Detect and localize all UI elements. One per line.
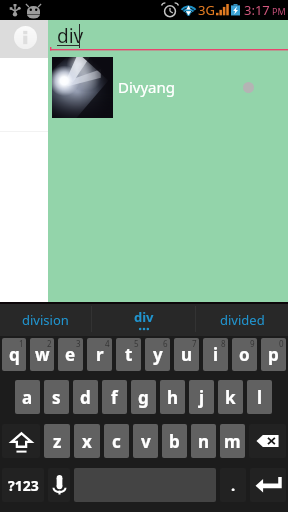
button[interactable]: n (191, 424, 216, 458)
staticText: l (257, 386, 263, 409)
staticText: r (96, 343, 104, 366)
staticText: s (52, 386, 61, 409)
button[interactable]: t (116, 338, 141, 371)
staticText: h (167, 386, 179, 409)
button[interactable]: w (30, 338, 54, 371)
staticText: 3 (76, 338, 81, 349)
button[interactable]: Info (14, 26, 37, 49)
staticText: 7 (192, 338, 197, 349)
staticText: 0 (279, 338, 284, 349)
button[interactable]: h (160, 380, 185, 414)
staticText: m (224, 430, 241, 453)
staticText: div (57, 23, 84, 49)
button[interactable]: division (0, 303, 91, 336)
button[interactable]: Backspace (249, 424, 286, 458)
button[interactable]: u (174, 338, 199, 371)
staticText: 3:17 (244, 1, 270, 19)
staticText: z (53, 430, 62, 453)
staticText: f (111, 386, 118, 409)
button[interactable]: d (73, 380, 98, 414)
button[interactable]: e (58, 338, 83, 371)
staticText: 1 (19, 338, 24, 349)
staticText: . (231, 475, 236, 495)
staticText: division (22, 311, 69, 329)
button[interactable]: Divyang (48, 54, 288, 120)
staticText: 8 (221, 338, 226, 349)
button[interactable]: div (92, 303, 195, 336)
staticText: u (181, 343, 193, 366)
button[interactable]: y (145, 338, 170, 371)
staticText: div (134, 308, 154, 326)
button[interactable]: Symbols (2, 468, 44, 502)
button[interactable]: Shift (2, 424, 40, 458)
staticText: 2 (47, 338, 52, 349)
staticText: 5 (134, 338, 139, 349)
staticText: PM (272, 5, 286, 17)
staticText: 3G (198, 1, 215, 19)
staticText: t (125, 343, 133, 366)
button[interactable]: l (247, 380, 272, 414)
button[interactable]: j (189, 380, 214, 414)
button[interactable]: q (2, 338, 26, 371)
button[interactable]: Voice input (48, 468, 70, 502)
button[interactable]: k (218, 380, 243, 414)
button[interactable]: Enter (250, 468, 286, 502)
staticText: w (35, 343, 50, 366)
staticText: d (80, 386, 91, 409)
button[interactable]: c (104, 424, 129, 458)
button[interactable]: b (162, 424, 187, 458)
button[interactable]: z (44, 424, 70, 458)
staticText: v (141, 430, 151, 453)
button[interactable]: v (133, 424, 158, 458)
staticText: q (9, 343, 20, 366)
staticText: e (65, 343, 76, 366)
staticText: o (239, 343, 250, 366)
button[interactable]: x (74, 424, 100, 458)
staticText: divided (220, 311, 265, 329)
staticText: ?123 (8, 476, 39, 495)
staticText: x (82, 430, 92, 453)
button[interactable]: a (15, 380, 40, 414)
staticText: n (198, 430, 210, 453)
staticText: a (22, 386, 33, 409)
staticText: b (169, 430, 180, 453)
button[interactable]: s (44, 380, 69, 414)
button[interactable]: divided (196, 303, 288, 336)
button[interactable]: g (131, 380, 156, 414)
button[interactable]: Period (220, 468, 246, 502)
staticText: y (153, 343, 163, 366)
button[interactable]: p (261, 338, 286, 371)
staticText: 6 (163, 338, 168, 349)
staticText: 9 (250, 338, 255, 349)
button[interactable]: r (87, 338, 112, 371)
staticText: p (268, 343, 279, 366)
button[interactable]: f (102, 380, 127, 414)
staticText: i (213, 343, 219, 366)
button[interactable]: m (220, 424, 245, 458)
staticText: k (225, 386, 236, 409)
staticText: 4 (105, 338, 110, 349)
staticText: c (112, 430, 121, 453)
button[interactable]: i (203, 338, 228, 371)
staticText: j (199, 386, 205, 409)
staticText: Divyang (118, 77, 176, 97)
staticText: g (138, 386, 149, 409)
button[interactable]: o (232, 338, 257, 371)
